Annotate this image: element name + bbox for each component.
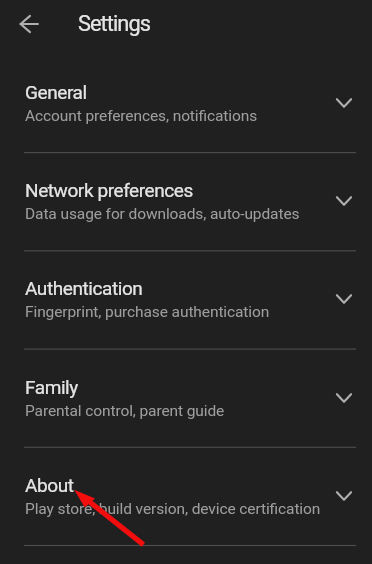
button[interactable]: About <box>0 447 372 545</box>
button[interactable]: Network preferences <box>0 152 372 250</box>
button[interactable]: Authentication <box>0 250 372 348</box>
staticText: Play store, build version, device certif… <box>25 500 321 518</box>
staticText: Network preferences <box>25 179 193 201</box>
staticText: Authentication <box>25 277 143 299</box>
staticText: Account preferences, notifications <box>25 107 258 125</box>
staticText: Data usage for downloads, auto-updates <box>25 205 300 223</box>
button[interactable]: Family <box>0 349 372 447</box>
button[interactable]: General <box>0 54 372 152</box>
staticText: Settings <box>78 11 150 37</box>
button[interactable]: Navigate up <box>11 6 47 42</box>
staticText: Fingerprint, purchase authentication <box>25 303 270 321</box>
staticText: Family <box>25 376 78 398</box>
staticText: Parental control, parent guide <box>25 402 225 420</box>
staticText: About <box>25 474 74 496</box>
staticText: General <box>25 81 87 103</box>
